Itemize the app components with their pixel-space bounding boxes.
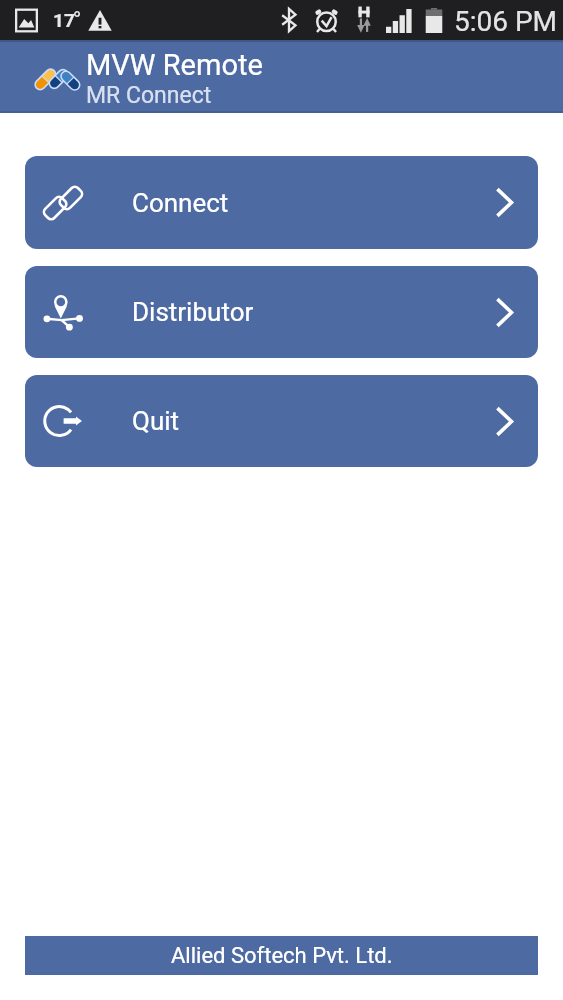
staticText: 5:06 PM <box>454 5 558 38</box>
button[interactable]: Distributor <box>25 266 538 358</box>
button[interactable]: Connect <box>25 156 538 249</box>
staticText: MR Connect <box>86 82 212 109</box>
staticText: 17 <box>53 9 75 31</box>
staticText: MVW Remote <box>86 48 263 82</box>
button[interactable]: Quit <box>25 375 538 467</box>
staticText: Distributor <box>132 297 254 327</box>
staticText: Quit <box>132 406 180 436</box>
staticText: Allied Softech Pvt. Ltd. <box>171 943 393 969</box>
staticText: Connect <box>132 188 229 218</box>
button[interactable]: Allied Softech Pvt. Ltd. <box>25 936 538 975</box>
